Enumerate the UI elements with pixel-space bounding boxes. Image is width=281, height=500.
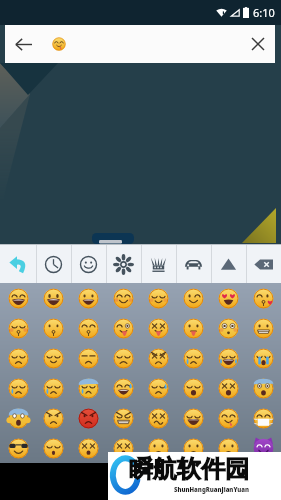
- button[interactable]: Emoji: [141, 283, 176, 313]
- button[interactable]: Emoji: [36, 313, 71, 343]
- button[interactable]: crown: [141, 245, 176, 283]
- button[interactable]: travel: [211, 245, 246, 283]
- button[interactable]: Emoji: [246, 343, 281, 373]
- button[interactable]: Emoji: [71, 313, 106, 343]
- button[interactable]: Emoji: [106, 433, 141, 463]
- button[interactable]: smiley: [71, 245, 106, 283]
- button[interactable]: Emoji: [246, 283, 281, 313]
- button[interactable]: Emoji: [36, 373, 71, 403]
- button[interactable]: Emoji: [211, 373, 246, 403]
- button[interactable]: Emoji: [106, 403, 141, 433]
- button[interactable]: car: [176, 245, 211, 283]
- button[interactable]: Emoji: [246, 403, 281, 433]
- button[interactable]: Emoji: [176, 343, 211, 373]
- button[interactable]: Emoji: [211, 343, 246, 373]
- button[interactable]: Emoji: [71, 343, 106, 373]
- button[interactable]: Emoji: [141, 343, 176, 373]
- button[interactable]: Emoji: [141, 313, 176, 343]
- button[interactable]: Clear: [241, 27, 275, 61]
- button[interactable]: Hide keyboard: [123, 464, 159, 500]
- button[interactable]: Emoji: [211, 403, 246, 433]
- button[interactable]: Emoji: [0, 283, 36, 313]
- staticText: 瞬航软件园: [129, 454, 249, 484]
- button[interactable]: Emoji: [176, 313, 211, 343]
- button[interactable]: Emoji: [0, 403, 36, 433]
- button[interactable]: Emoji: [36, 343, 71, 373]
- button[interactable]: Emoji: [0, 313, 36, 343]
- button[interactable]: Back: [5, 26, 41, 62]
- button[interactable]: Emoji: [141, 433, 176, 463]
- button[interactable]: Emoji: [141, 373, 176, 403]
- button[interactable]: Emoji: [71, 373, 106, 403]
- button[interactable]: Emoji: [211, 313, 246, 343]
- button[interactable]: Emoji: [176, 433, 211, 463]
- button[interactable]: Emoji: [176, 403, 211, 433]
- button[interactable]: Emoji: [106, 283, 141, 313]
- button[interactable]: Emoji: [36, 403, 71, 433]
- button[interactable]: nature: [106, 245, 141, 283]
- button[interactable]: Emoji: [71, 433, 106, 463]
- staticText: ShunHangRuanJianYuan: [174, 486, 249, 494]
- button[interactable]: del: [246, 245, 281, 283]
- button[interactable]: Emoji: [246, 433, 281, 463]
- button[interactable]: Emoji: [0, 373, 36, 403]
- button[interactable]: Emoji: [71, 403, 106, 433]
- button[interactable]: Emoji: [106, 343, 141, 373]
- button[interactable]: Emoji: [106, 313, 141, 343]
- button[interactable]: Emoji: [211, 283, 246, 313]
- staticText: 6:10: [253, 5, 275, 20]
- button[interactable]: Emoji: [141, 403, 176, 433]
- button[interactable]: Emoji: [106, 373, 141, 403]
- button[interactable]: Emoji: [246, 313, 281, 343]
- button[interactable]: Emoji: [0, 343, 36, 373]
- button[interactable]: Emoji: [0, 433, 36, 463]
- button[interactable]: Emoji: [176, 283, 211, 313]
- button[interactable]: Emoji: [211, 433, 246, 463]
- button[interactable]: undo: [0, 245, 36, 283]
- button[interactable]: Emoji: [176, 373, 211, 403]
- button[interactable]: Emoji: [36, 283, 71, 313]
- button[interactable]: Emoji: [71, 283, 106, 313]
- button[interactable]: recent: [36, 245, 71, 283]
- button[interactable]: Emoji: [246, 373, 281, 403]
- button[interactable]: Emoji: [36, 433, 71, 463]
